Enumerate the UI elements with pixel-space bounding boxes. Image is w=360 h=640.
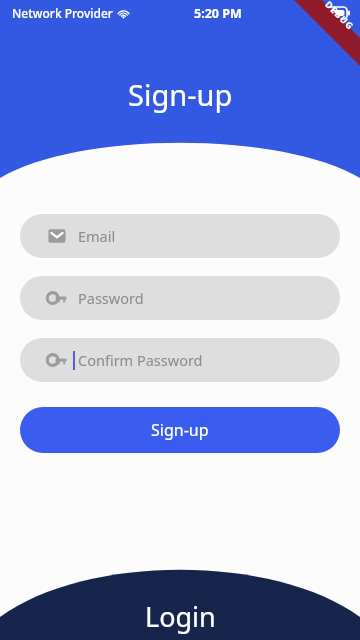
staticText: Password	[78, 288, 144, 308]
staticText: Sign-up	[128, 75, 233, 114]
staticText: Confirm Password	[78, 350, 203, 370]
staticText: Sign-up	[151, 419, 209, 441]
staticText: 5:20 PM	[194, 5, 242, 22]
staticText: Login	[145, 598, 216, 635]
staticText: DEBUG	[323, 0, 357, 32]
button[interactable]: Sign-up	[20, 407, 340, 453]
staticText: Network Provider	[12, 5, 113, 21]
staticText: Email	[78, 226, 116, 246]
button[interactable]: Password	[20, 276, 340, 320]
button[interactable]: Email	[20, 214, 340, 258]
button[interactable]: Login	[0, 562, 360, 640]
button[interactable]: Confirm Password	[20, 338, 340, 382]
